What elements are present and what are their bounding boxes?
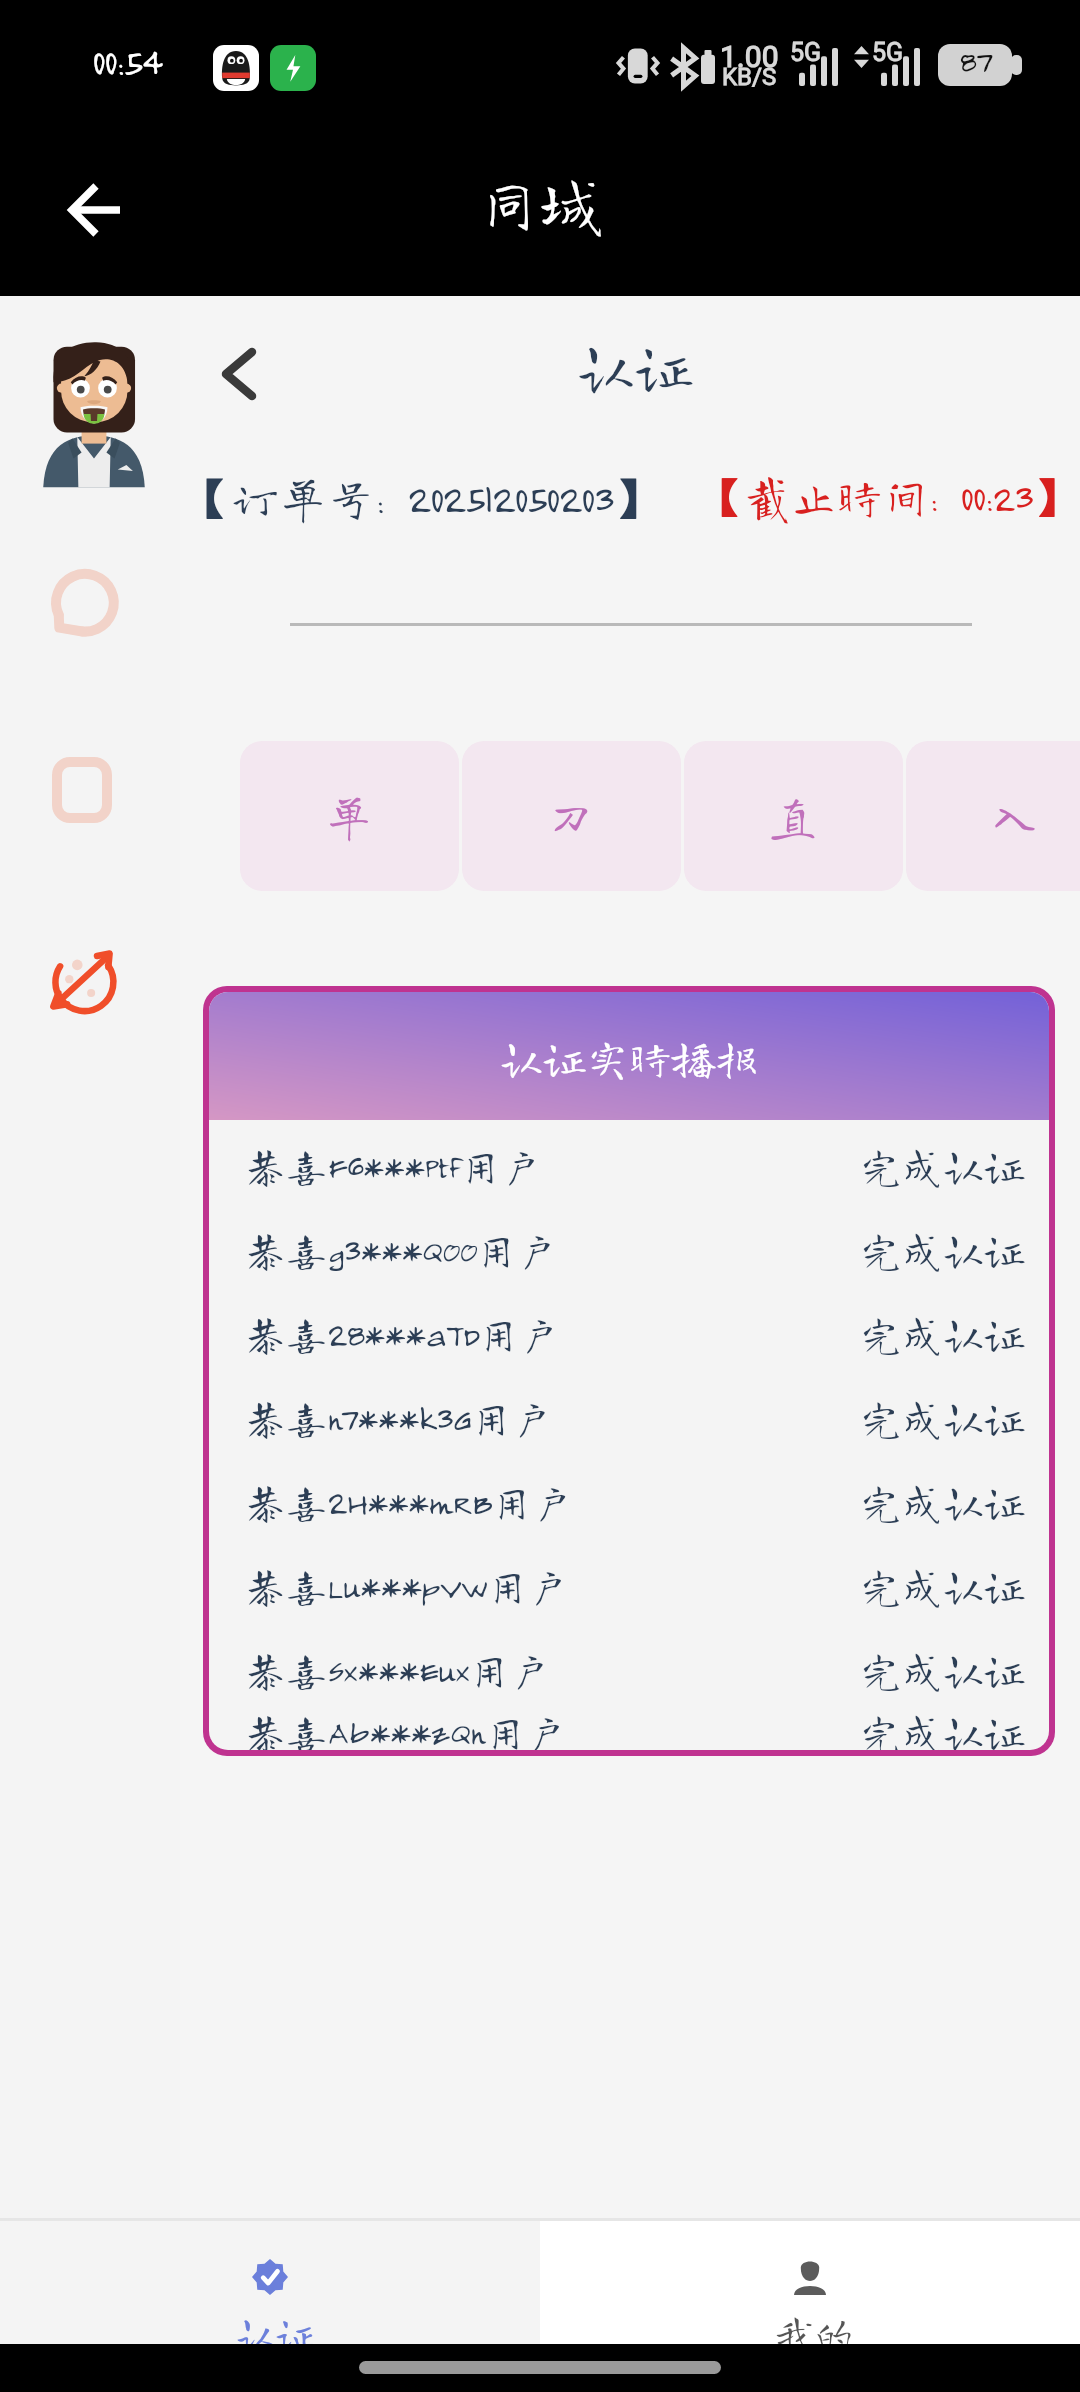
button[interactable]: 恭喜n7***k3G用户: [209, 1375, 1049, 1459]
staticText: 87: [959, 42, 991, 80]
staticText: 恭喜2H***mRB用户: [245, 1481, 574, 1522]
button[interactable]: 恭喜2H***mRB用户: [209, 1459, 1049, 1543]
button[interactable]: 恭喜F6***Ptf用户: [209, 1123, 1049, 1207]
staticText: 恭喜28***aTD用户: [245, 1313, 560, 1354]
staticText: 完成认证: [861, 1229, 1025, 1270]
staticText: 恭喜n7***k3G用户: [245, 1397, 553, 1438]
button[interactable]: 恭喜28***aTD用户: [209, 1291, 1049, 1375]
staticText: 完成认证: [861, 1711, 1025, 1750]
staticText: KB/S: [722, 63, 777, 91]
staticText: 恭喜F6***Ptf用户: [245, 1145, 542, 1186]
staticText: 恭喜g3***QOO用户: [245, 1229, 558, 1270]
staticText: 单: [325, 792, 374, 840]
staticText: 直: [769, 792, 818, 840]
staticText: 完成认证: [861, 1313, 1025, 1354]
button[interactable]: 恭喜Lu***pVw用户: [209, 1543, 1049, 1627]
button[interactable]: Profile: [40, 340, 148, 488]
staticText: 完成认证: [861, 1481, 1025, 1522]
button[interactable]: 恭喜Ab***zQn用户: [209, 1711, 1049, 1750]
button[interactable]: Back: [50, 164, 142, 256]
staticText: 完成认证: [861, 1145, 1025, 1186]
staticText: 完成认证: [861, 1565, 1025, 1606]
button[interactable]: Discover: [42, 938, 126, 1022]
button[interactable]: 单: [240, 741, 459, 891]
button[interactable]: 我的: [540, 2221, 1080, 2344]
staticText: 认证: [236, 2313, 316, 2353]
button[interactable]: 直: [684, 741, 903, 891]
button[interactable]: Back: [194, 324, 280, 410]
staticText: 完成认证: [861, 1649, 1025, 1690]
button[interactable]: 认证: [0, 2221, 540, 2344]
button[interactable]: Orders: [52, 757, 112, 823]
staticText: 我的: [774, 2313, 854, 2353]
staticText: 认证: [577, 337, 694, 395]
staticText: 00:54: [92, 38, 161, 83]
staticText: 同城: [478, 172, 603, 234]
staticText: 刀: [547, 792, 596, 840]
button[interactable]: 恭喜Sx***Eux用户: [209, 1627, 1049, 1711]
staticText: 5G: [790, 38, 822, 67]
staticText: 完成认证: [861, 1397, 1025, 1438]
button[interactable]: Messages: [42, 570, 120, 648]
staticText: 认证实时播报: [500, 1036, 758, 1079]
button[interactable]: 刀: [462, 741, 681, 891]
staticText: 【截止时间: 00:23】: [699, 474, 1079, 520]
staticText: 入: [991, 792, 1040, 840]
staticText: 1.00: [720, 39, 779, 74]
staticText: 【订单号: 202512050203】: [183, 474, 661, 522]
button[interactable]: 入: [906, 741, 1080, 891]
staticText: 5G: [872, 38, 904, 67]
staticText: 恭喜Lu***pVw用户: [245, 1565, 569, 1606]
staticText: 恭喜Ab***zQn用户: [245, 1711, 567, 1750]
button[interactable]: 恭喜g3***QOO用户: [209, 1207, 1049, 1291]
staticText: 恭喜Sx***Eux用户: [245, 1649, 551, 1690]
